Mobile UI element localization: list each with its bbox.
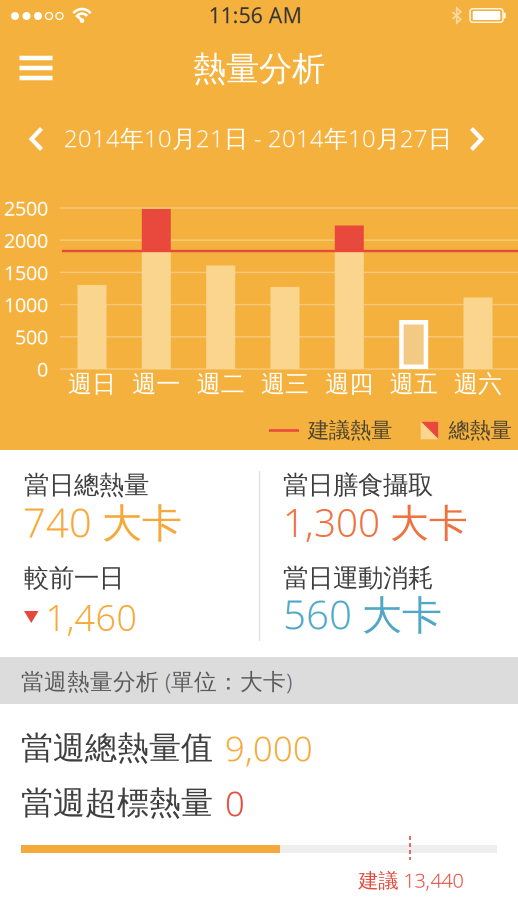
staticText: 週二 [197,369,245,399]
staticText: 1000 [4,291,48,318]
staticText: 建議 13,440 [358,867,463,893]
staticText: 當日運動消耗 [283,562,433,593]
staticText: 0 [37,356,48,382]
staticText: 當日總熱量 [24,469,149,500]
staticText: 當日膳食攝取 [283,469,433,500]
staticText: 當週熱量分析 (單位：大卡) [21,666,292,696]
staticText: 週日 [68,369,116,399]
staticText: 2500 [4,195,48,221]
staticText: 熱量分析 [193,48,325,89]
staticText: 1,460 [45,593,137,641]
staticText: 2014年10月21日 - 2014年10月27日 [64,122,452,154]
staticText: 1500 [4,259,48,286]
staticText: 9,000 [225,725,313,771]
staticText: 560 大卡 [283,587,442,640]
staticText: 1,300 大卡 [283,496,468,548]
staticText: 當週總熱量值 [21,728,213,768]
button[interactable] [335,225,364,369]
button[interactable] [460,119,494,159]
staticText: 週三 [261,369,309,399]
button[interactable] [14,50,58,86]
button[interactable] [270,287,299,369]
staticText: 0 [225,780,245,826]
staticText: 500 [15,323,48,350]
staticText: 740 大卡 [23,495,182,548]
button[interactable] [399,320,428,369]
staticText: 2000 [4,227,48,253]
staticText: 週四 [325,369,373,399]
staticText: 較前一日 [24,562,124,593]
staticText: 總熱量 [448,417,511,444]
staticText: 週一 [132,369,180,399]
staticText: 週五 [390,369,438,399]
button[interactable] [20,119,54,159]
staticText: 當週超標熱量 [21,783,213,823]
staticText: 11:56 AM [208,1,301,29]
staticText: 建議熱量 [308,417,392,444]
staticText: 週六 [454,369,502,399]
button[interactable] [142,209,171,369]
